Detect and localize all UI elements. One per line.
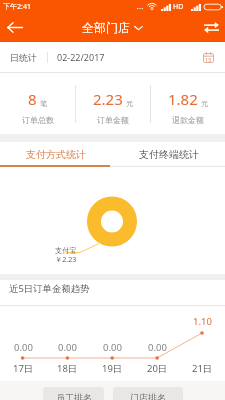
staticText: 18日	[57, 362, 78, 375]
staticText: 订单总数	[22, 115, 54, 125]
button[interactable]: 门店排名	[113, 387, 183, 400]
staticText: 1.10	[193, 315, 212, 328]
staticText: 支付宝	[55, 246, 77, 255]
staticText: 0.00	[14, 341, 33, 354]
staticText: 日统计	[10, 52, 37, 63]
staticText: 笔	[40, 99, 47, 108]
button[interactable]: 8	[0, 73, 75, 134]
staticText: 1.82	[168, 89, 198, 109]
button[interactable]: 支付终端统计	[112, 142, 225, 167]
staticText: 17日	[13, 362, 34, 375]
staticText: 支付方式统计	[26, 148, 86, 161]
staticText: 元	[201, 99, 208, 108]
staticText: HD	[173, 2, 184, 12]
staticText: 0.00	[148, 341, 167, 354]
button[interactable]: 支付方式统计	[0, 142, 112, 167]
button[interactable]: 员工排名	[43, 387, 104, 400]
staticText: 门店排名	[130, 392, 166, 400]
staticText: 0.00	[58, 341, 77, 354]
staticText: 02-22/2017	[57, 51, 105, 63]
staticText: 退款金额	[172, 115, 204, 125]
staticText: 下午2:41	[3, 2, 31, 12]
staticText: 员工排名	[56, 392, 92, 400]
staticText: 0.00	[103, 341, 122, 354]
staticText: 15	[205, 56, 212, 63]
staticText: 19日	[102, 362, 123, 375]
staticText: 20日	[147, 362, 168, 375]
staticText: 订单金额	[97, 115, 129, 125]
staticText: 支付终端统计	[139, 148, 199, 161]
staticText: ￥2.23	[55, 254, 77, 264]
staticText: 21日	[192, 362, 213, 375]
button[interactable]: 1.82	[151, 73, 225, 134]
staticText: 8	[28, 89, 37, 109]
button[interactable]: Back	[0, 13, 30, 42]
button[interactable]: 全部门店	[82, 20, 143, 35]
button[interactable]: 2.23	[76, 73, 150, 134]
staticText: 2.23	[93, 89, 123, 109]
staticText: 全部门店	[82, 20, 130, 35]
staticText: 近5日订单金额趋势	[9, 282, 90, 295]
button[interactable]: Pick date	[199, 48, 217, 66]
button[interactable]: Switch stores	[197, 13, 225, 42]
staticText: 元	[126, 99, 133, 108]
